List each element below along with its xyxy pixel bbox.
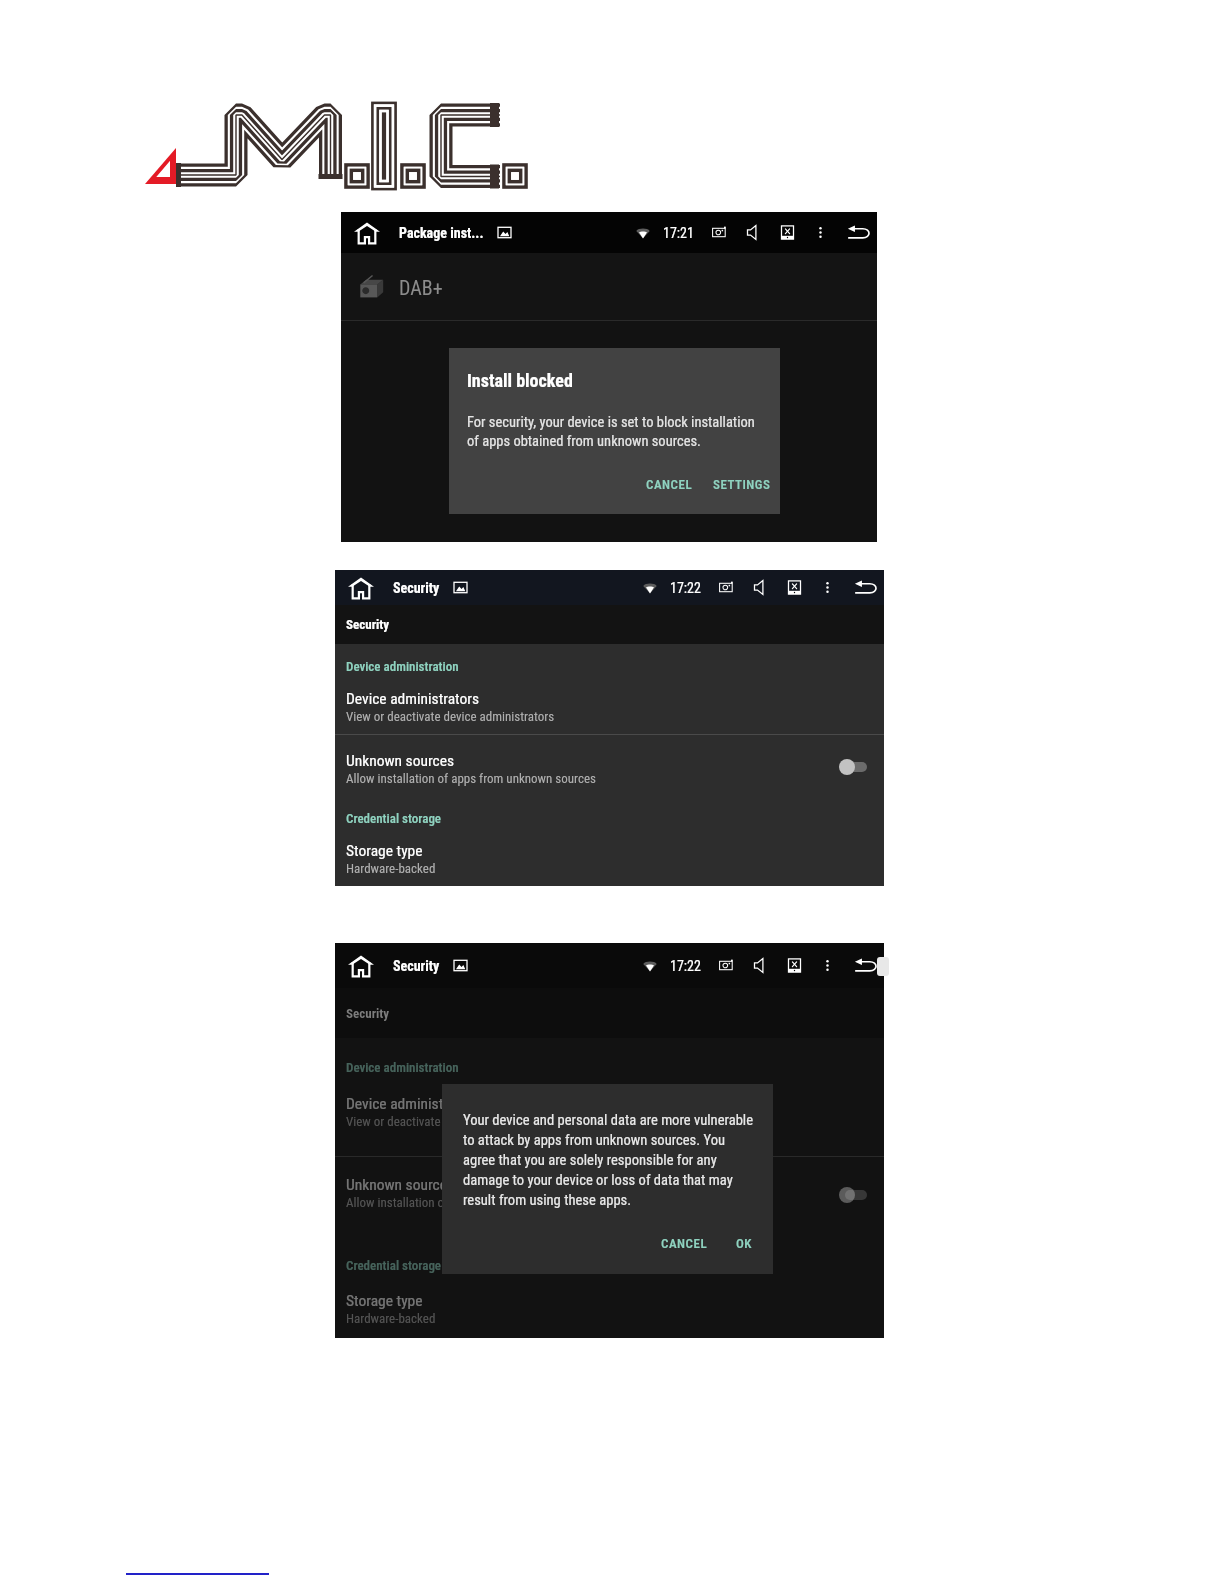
button[interactable]: Unknown sources toggle	[839, 1185, 867, 1205]
button[interactable]: Screen off	[787, 580, 802, 595]
button[interactable]: Unknown sources	[335, 752, 884, 786]
staticText: Your device and personal data are more v…	[463, 1111, 754, 1208]
staticText: OK	[736, 1236, 752, 1251]
button[interactable]: OK	[734, 1232, 754, 1255]
button[interactable]: Home	[348, 575, 374, 601]
button[interactable]: CANCEL	[659, 1232, 710, 1255]
staticText: Security	[346, 617, 390, 632]
staticText: 17:21	[663, 225, 694, 241]
button[interactable]: More options	[821, 959, 834, 972]
staticText: CANCEL	[646, 477, 693, 492]
button[interactable]: Back	[846, 219, 873, 246]
button[interactable]: Unknown sources	[335, 1176, 884, 1210]
staticText: 17:22	[670, 958, 701, 974]
staticText: Allow installation of apps from unknown …	[346, 1195, 596, 1210]
button[interactable]: More options	[821, 581, 834, 594]
staticText: 17:22	[670, 580, 701, 596]
staticText: View or deactivate device administrators	[346, 709, 555, 724]
staticText: Security	[346, 1006, 390, 1021]
staticText: SETTINGS	[713, 477, 771, 492]
button[interactable]: Storage type	[335, 842, 884, 876]
staticText: DAB+	[399, 276, 443, 299]
button[interactable]: Mute	[753, 958, 768, 973]
staticText: Device administrators	[346, 1095, 480, 1113]
button[interactable]: Screen off	[780, 225, 795, 240]
staticText: Hardware-backed	[346, 1311, 436, 1326]
button[interactable]: Unknown sources toggle	[839, 757, 867, 777]
staticText: Device administration	[346, 659, 459, 674]
button[interactable]: Device administrators	[335, 1095, 884, 1129]
staticText: Unknown sources	[346, 752, 455, 770]
button[interactable]: Home	[354, 220, 380, 246]
button[interactable]: Storage type	[335, 1292, 884, 1326]
button[interactable]: Device administrators	[335, 690, 884, 724]
button[interactable]: Screenshot	[712, 225, 727, 240]
button[interactable]: Back	[853, 574, 880, 601]
button[interactable]: Screenshot	[719, 958, 734, 973]
button[interactable]: Screen off	[787, 958, 802, 973]
button[interactable]: CANCEL	[644, 473, 695, 496]
staticText: Package inst...	[399, 225, 484, 241]
button[interactable]: DAB+	[341, 253, 877, 321]
button[interactable]: Screenshot	[719, 580, 734, 595]
button[interactable]: Mute	[746, 225, 761, 240]
staticText: Storage type	[346, 1292, 423, 1310]
staticText: Device administration	[346, 1060, 459, 1075]
staticText: Credential storage	[346, 1258, 442, 1273]
staticText: Allow installation of apps from unknown …	[346, 771, 596, 786]
button[interactable]: Mute	[753, 580, 768, 595]
button[interactable]: Home	[348, 953, 374, 979]
staticText: For security, your device is set to bloc…	[467, 414, 755, 450]
button[interactable]: Back	[853, 952, 880, 979]
button[interactable]: SETTINGS	[711, 473, 773, 496]
staticText: Credential storage	[346, 811, 442, 826]
staticText: Hardware-backed	[346, 861, 436, 876]
staticText: Security	[393, 580, 440, 596]
staticText: Unknown sources	[346, 1176, 455, 1194]
staticText: CANCEL	[661, 1236, 708, 1251]
button[interactable]: More options	[814, 226, 827, 239]
staticText: Security	[393, 958, 440, 974]
staticText: Device administrators	[346, 690, 480, 708]
staticText: Storage type	[346, 842, 423, 860]
staticText: Install blocked	[467, 370, 573, 391]
staticText: View or deactivate device administrators	[346, 1114, 555, 1129]
